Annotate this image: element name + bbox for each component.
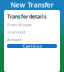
staticText: From account (7, 22, 31, 27)
staticText: Amount (7, 37, 21, 42)
staticText: New Transfer (10, 1, 53, 9)
staticText: Transfer details (7, 13, 47, 20)
staticText: To account (7, 29, 25, 35)
button[interactable]: Continue (7, 44, 57, 48)
staticText: Continue (22, 43, 41, 49)
